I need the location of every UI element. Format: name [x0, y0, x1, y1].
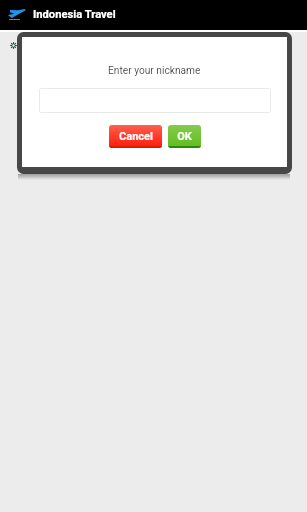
button[interactable]: Cancel — [109, 125, 162, 148]
staticText: OK — [177, 130, 192, 143]
button[interactable]: OK — [168, 125, 201, 148]
other: App logo — [8, 9, 26, 18]
staticText: Indonesia Travel — [33, 8, 116, 21]
staticText: Cancel — [119, 130, 153, 143]
staticText: Enter your nickname — [108, 65, 201, 77]
